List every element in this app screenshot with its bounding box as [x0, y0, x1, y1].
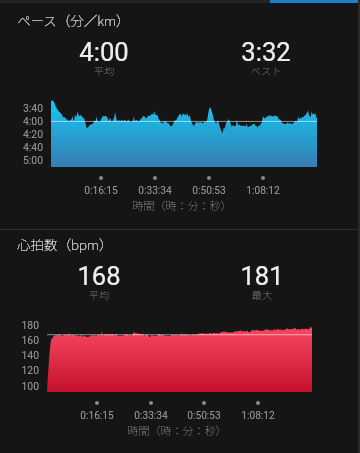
staticText: 0:16:15 — [31, 185, 171, 197]
staticText: 100 — [0, 380, 39, 392]
staticText: 4:00 — [0, 115, 43, 127]
staticText: 最大 — [192, 287, 332, 302]
staticText: 時間（時：分：秒） — [107, 422, 247, 438]
staticText: ベスト — [196, 63, 336, 78]
staticText: 3:40 — [0, 102, 43, 114]
staticText: 1:08:12 — [188, 410, 328, 422]
staticText: 4:20 — [0, 128, 43, 140]
staticText: ペース（分／km） — [17, 10, 130, 30]
staticText: 160 — [0, 334, 39, 346]
button[interactable]: Scroll position — [270, 0, 360, 3]
staticText: 0:50:53 — [139, 185, 279, 197]
staticText: 0:16:15 — [27, 410, 167, 422]
staticText: 平均 — [34, 63, 174, 78]
staticText: 4:40 — [0, 141, 43, 153]
staticText: 0:33:34 — [85, 185, 225, 197]
staticText: 平均 — [29, 287, 169, 302]
staticText: 心拍数（bpm） — [17, 234, 113, 254]
staticText: 3:32 — [196, 37, 336, 67]
staticText: 120 — [0, 364, 39, 376]
staticText: 180 — [0, 319, 39, 331]
staticText: 181 — [192, 261, 332, 291]
staticText: 1:08:12 — [193, 185, 333, 197]
staticText: 0:50:53 — [134, 410, 274, 422]
staticText: 168 — [29, 261, 169, 291]
staticText: 時間（時：分：秒） — [112, 197, 252, 213]
staticText: 5:00 — [0, 154, 43, 166]
staticText: 4:00 — [34, 37, 174, 67]
staticText: 0:33:34 — [81, 410, 221, 422]
staticText: 140 — [0, 349, 39, 361]
